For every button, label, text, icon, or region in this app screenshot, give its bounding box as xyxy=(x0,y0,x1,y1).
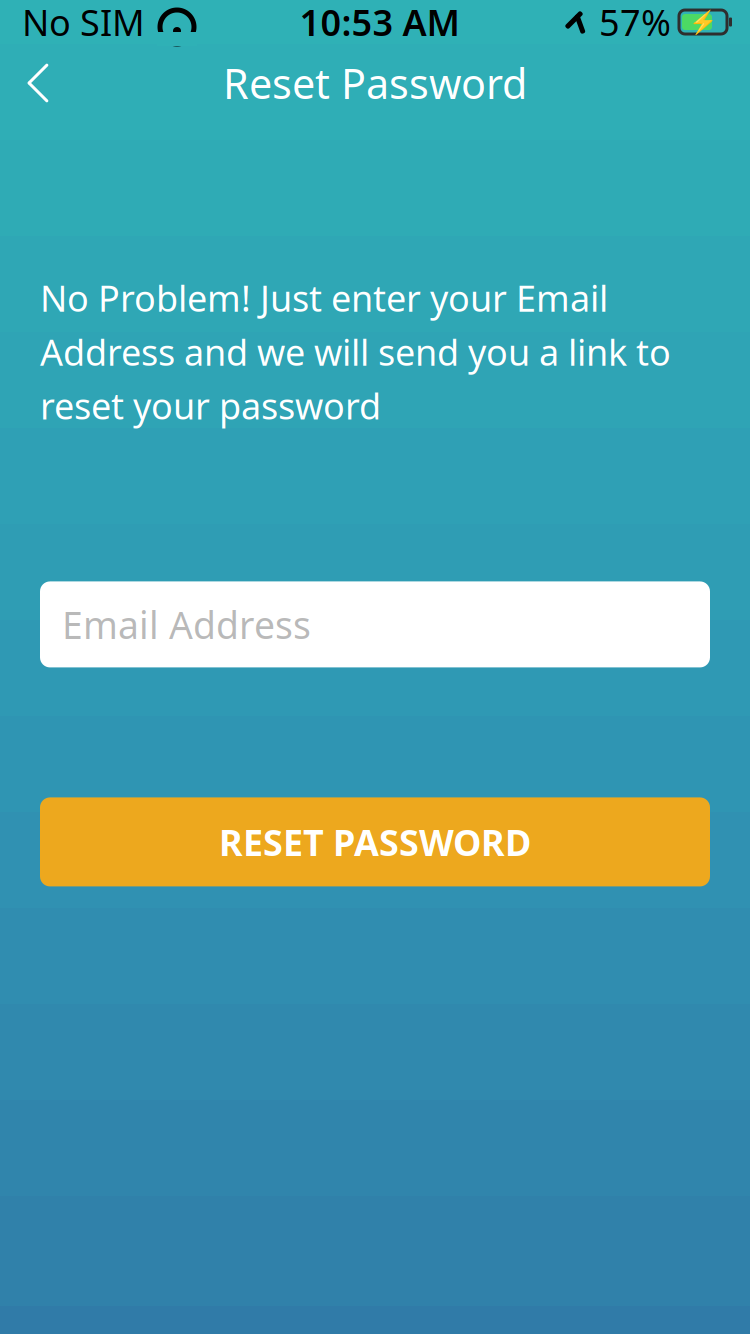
staticText: 10:53 AM xyxy=(299,0,459,46)
button[interactable]: Email Address xyxy=(40,581,710,667)
button[interactable]: Back xyxy=(0,45,76,121)
staticText: 57% xyxy=(599,0,671,46)
staticText: No SIM xyxy=(22,0,145,46)
staticText: ⚡ xyxy=(689,9,717,35)
staticText: No Problem! Just enter your Email Addres… xyxy=(40,274,671,429)
button[interactable]: RESET PASSWORD xyxy=(40,797,710,886)
staticText: RESET PASSWORD xyxy=(219,818,531,866)
staticText: Reset Password xyxy=(223,56,527,110)
staticText: Email Address xyxy=(62,600,311,649)
